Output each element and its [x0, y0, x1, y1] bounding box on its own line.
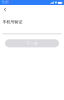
button[interactable]: 下一步	[5, 39, 59, 47]
staticText: 手机号验证	[2, 19, 22, 24]
button[interactable]: Back	[0, 5, 10, 14]
staticText: 下一步	[26, 41, 38, 46]
button[interactable]: Phone number	[2, 26, 61, 34]
staticText: 9:41	[2, 1, 9, 4]
